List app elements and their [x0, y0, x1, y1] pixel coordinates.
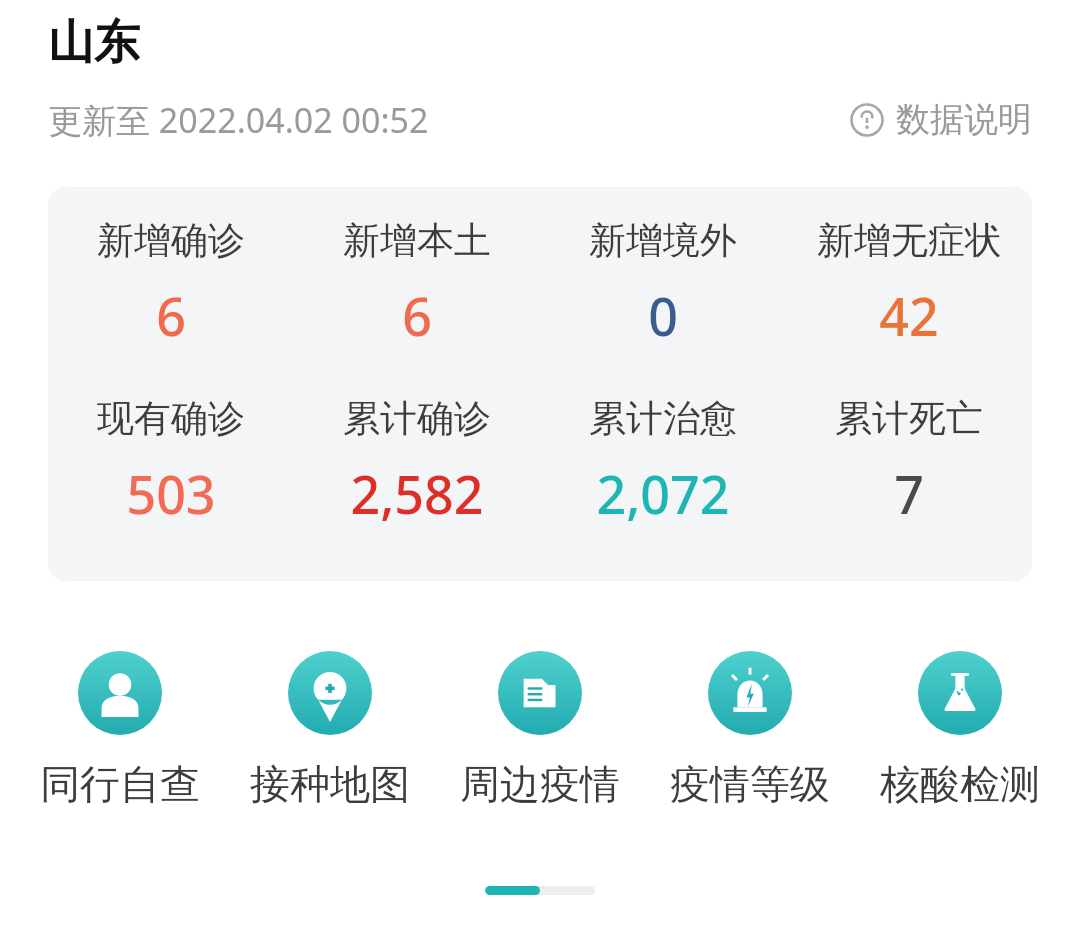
button[interactable]: 新增无症状 [786, 217, 1032, 351]
staticText: 6 [402, 280, 432, 351]
staticText: 新增本土 [343, 217, 491, 264]
button[interactable]: 现有确诊 [48, 395, 294, 529]
staticText: 核酸检测 [880, 759, 1040, 809]
staticText: 2,072 [596, 458, 730, 529]
staticText: 42 [879, 280, 939, 351]
button[interactable]: 新增境外 [540, 217, 786, 351]
other: 周边疫情 [498, 651, 582, 735]
staticText: 疫情等级 [670, 759, 830, 809]
staticText: 新增确诊 [97, 217, 245, 264]
button[interactable]: 累计死亡 [786, 395, 1032, 529]
staticText: 周边疫情 [460, 759, 620, 809]
staticText: 山东 [48, 14, 140, 72]
staticText: 累计确诊 [343, 395, 491, 442]
button[interactable]: 累计确诊 [294, 395, 540, 529]
button[interactable]: 接种地图 [246, 651, 414, 809]
button[interactable]: 新增本土 [294, 217, 540, 351]
staticText: 7 [894, 458, 924, 529]
staticText: 0 [648, 280, 678, 351]
staticText: 数据说明 [896, 98, 1032, 141]
staticText: 接种地图 [250, 759, 410, 809]
button[interactable]: 数据说明 [846, 94, 1036, 145]
button[interactable]: 新增确诊 [48, 217, 294, 351]
other: 疫情等级 [708, 651, 792, 735]
button[interactable]: 同行自查 [36, 651, 204, 809]
button[interactable]: 累计治愈 [540, 395, 786, 529]
staticText: 2,582 [350, 458, 484, 529]
other: 同行自查 [78, 651, 162, 735]
staticText: 现有确诊 [97, 395, 245, 442]
button[interactable]: 周边疫情 [456, 651, 624, 809]
staticText: 新增无症状 [817, 217, 1002, 264]
staticText: 6 [156, 280, 186, 351]
other: 接种地图 [288, 651, 372, 735]
button[interactable]: 疫情等级 [666, 651, 834, 809]
staticText: 更新至 2022.04.02 00:52 [48, 97, 429, 143]
other: 核酸检测 [918, 651, 1002, 735]
staticText: 503 [126, 458, 216, 529]
staticText: 累计死亡 [835, 395, 983, 442]
staticText: 同行自查 [40, 759, 200, 809]
staticText: 新增境外 [589, 217, 737, 264]
button[interactable]: 核酸检测 [876, 651, 1044, 809]
staticText: 累计治愈 [589, 395, 737, 442]
